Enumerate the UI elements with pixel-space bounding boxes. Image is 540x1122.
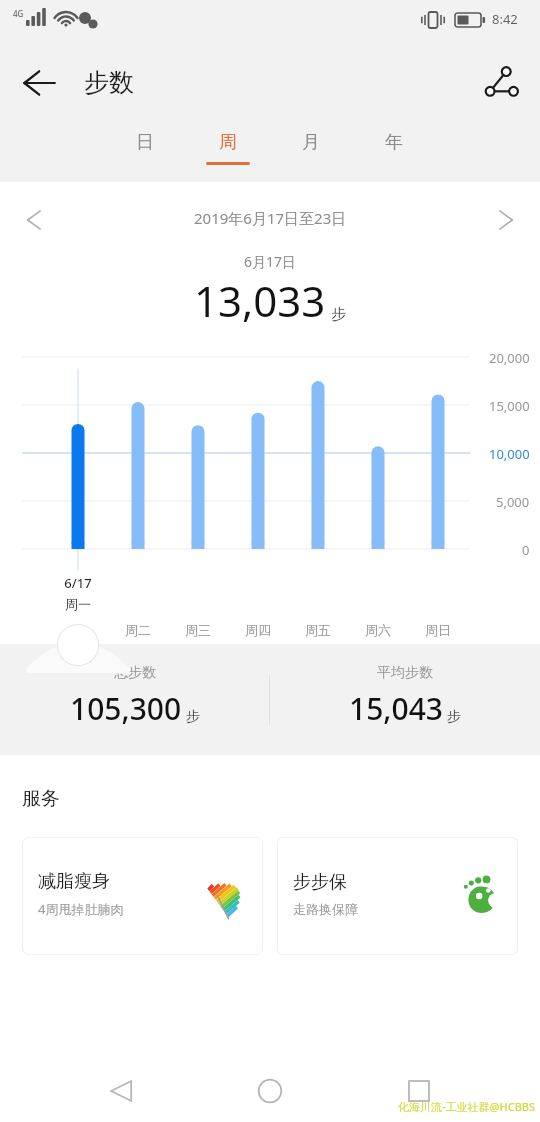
staticText: 8:42 (492, 10, 518, 28)
staticText: 15,000 (489, 397, 530, 415)
button[interactable]: 年 (362, 125, 426, 182)
button[interactable]: 周 (196, 125, 260, 182)
staticText: 6/17 (58, 574, 98, 592)
staticText: 周六 (358, 622, 398, 638)
staticText: 周二 (118, 622, 158, 638)
staticText: 10,000 (489, 445, 530, 463)
staticText: 总步数 (114, 664, 156, 682)
staticText: 周一 (58, 596, 98, 612)
staticText: 5,000 (496, 493, 530, 511)
button[interactable]: 月 (279, 125, 343, 182)
staticText: 周日 (418, 622, 458, 638)
button[interactable]: Share (474, 57, 526, 109)
button[interactable]: Back (14, 57, 66, 109)
button[interactable]: 日 (113, 125, 177, 182)
staticText: 步步保 (293, 871, 347, 894)
button[interactable]: Next week (482, 196, 530, 244)
staticText: 日 (136, 131, 154, 154)
staticText: 6月17日 (244, 252, 297, 271)
staticText: 年 (385, 131, 403, 154)
staticText: 步 (331, 305, 346, 324)
button[interactable]: 步步保 (277, 837, 518, 955)
staticText: 月 (302, 131, 320, 154)
staticText: 减脂瘦身 (38, 870, 110, 893)
staticText: 平均步数 (377, 664, 433, 682)
button[interactable]: Home (243, 1064, 297, 1118)
staticText: 4G (13, 8, 24, 19)
staticText: 15,043 (349, 688, 443, 729)
staticText: 周四 (238, 622, 278, 638)
button[interactable]: Back (95, 1064, 149, 1118)
staticText: 20,000 (489, 349, 530, 367)
staticText: 周五 (298, 622, 338, 638)
staticText: 4周甩掉肚腩肉 (38, 900, 124, 918)
staticText: 走路换保障 (293, 901, 358, 917)
staticText: 步 (186, 708, 200, 726)
staticText: 周三 (178, 622, 218, 638)
button[interactable]: 减脂瘦身 (22, 837, 263, 955)
staticText: 服务 (22, 787, 60, 811)
staticText: 0 (522, 541, 530, 559)
button[interactable]: Previous week (10, 196, 58, 244)
staticText: 步 (447, 708, 461, 726)
button[interactable]: Recent apps (392, 1064, 446, 1118)
button[interactable]: 平均步数 (270, 644, 540, 755)
staticText: 13,033 (194, 272, 326, 329)
staticText: 2019年6月17日至23日 (194, 208, 347, 228)
staticText: 步数 (84, 67, 134, 98)
staticText: 周 (219, 131, 237, 154)
staticText: 105,300 (70, 688, 182, 729)
staticText: 化海川流-工业社群@HCBBS (398, 1099, 536, 1114)
button[interactable]: 总步数 (0, 644, 269, 755)
